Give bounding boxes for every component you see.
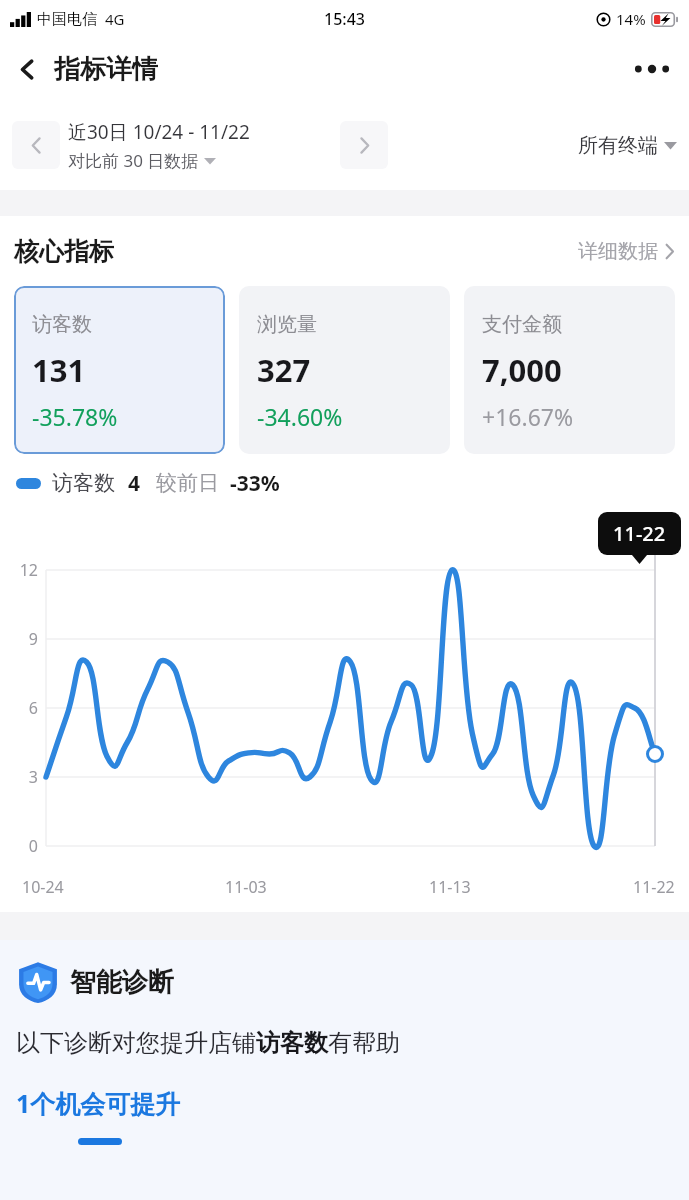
button[interactable]: Next period [340, 121, 388, 169]
staticText: 中国电信 [37, 10, 97, 29]
staticText: 访客数 [32, 312, 92, 337]
staticText: 支付金额 [482, 312, 562, 337]
staticText: 0 [8, 835, 38, 857]
button[interactable]: 所有终端 [578, 133, 677, 158]
staticText: 11-22 [613, 520, 666, 547]
staticText: 访客数 [256, 1028, 328, 1058]
staticText: -35.78% [32, 401, 118, 432]
staticText: 详细数据 [578, 239, 658, 264]
staticText: 浏览量 [257, 312, 317, 337]
staticText: 近30日 10/24 - 11/22 [68, 119, 250, 145]
staticText: 11-22 [633, 876, 675, 898]
button[interactable]: Previous period [12, 121, 60, 169]
staticText: +16.67% [482, 401, 574, 432]
button[interactable]: 详细数据 [578, 239, 675, 264]
button[interactable]: Back [4, 46, 50, 92]
staticText: 对比前 30 日数据 [68, 149, 199, 172]
staticText: 4 [128, 469, 141, 498]
button[interactable]: 1个机会可提升 [16, 1086, 181, 1120]
staticText: 131 [32, 349, 86, 391]
staticText: 6 [8, 697, 38, 719]
staticText: 14% [616, 9, 646, 29]
staticText: 4G [105, 9, 125, 29]
staticText: 有帮助 [328, 1028, 400, 1058]
staticText: 11-13 [429, 876, 471, 898]
staticText: 327 [257, 349, 311, 391]
button[interactable]: More options [627, 44, 677, 94]
staticText: 指标详情 [54, 53, 158, 86]
staticText: 较前日 [156, 470, 219, 496]
staticText: 9 [8, 628, 38, 650]
staticText: 11-03 [225, 876, 267, 898]
staticText: -34.60% [257, 401, 343, 432]
button[interactable]: 支付金额 [464, 286, 675, 454]
staticText: 所有终端 [578, 133, 658, 158]
button[interactable]: 浏览量 [239, 286, 450, 454]
button[interactable]: 近30日 10/24 - 11/22 [68, 119, 250, 172]
staticText: -33% [230, 469, 280, 498]
staticText: 以下诊断对您提升店铺 [16, 1028, 256, 1058]
staticText: 访客数 [52, 470, 115, 496]
staticText: 7,000 [482, 349, 562, 391]
staticText: 智能诊断 [70, 966, 174, 999]
staticText: 1个机会可提升 [16, 1086, 181, 1120]
button[interactable]: 访客数 [14, 286, 225, 454]
staticText: 核心指标 [14, 236, 114, 267]
staticText: 15:43 [324, 8, 365, 30]
staticText: 10-24 [22, 876, 64, 898]
staticText: 12 [8, 559, 38, 581]
staticText: 3 [8, 766, 38, 788]
